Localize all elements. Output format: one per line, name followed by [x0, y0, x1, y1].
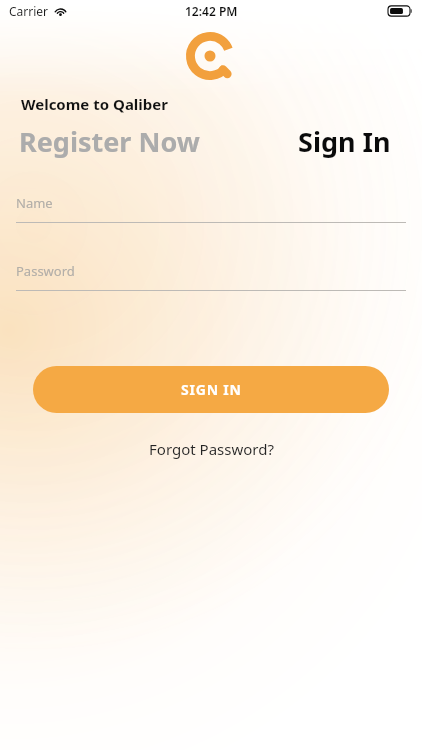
button[interactable]: Forgot Password? — [141, 436, 282, 462]
staticText: SIGN IN — [181, 380, 242, 399]
button[interactable]: Register Now — [19, 123, 200, 160]
staticText: Sign In — [298, 123, 391, 160]
button[interactable]: Sign In — [298, 123, 391, 160]
button[interactable]: Name — [16, 194, 406, 223]
staticText: Forgot Password? — [149, 439, 274, 459]
button[interactable]: SIGN IN — [33, 366, 389, 413]
button[interactable]: Password — [16, 262, 406, 291]
staticText: Welcome to Qaliber — [21, 94, 168, 114]
staticText: Password — [16, 262, 75, 280]
staticText: Carrier — [9, 3, 49, 19]
staticText: 12:42 PM — [185, 3, 238, 19]
staticText: Name — [16, 194, 53, 212]
staticText: Register Now — [19, 123, 200, 160]
